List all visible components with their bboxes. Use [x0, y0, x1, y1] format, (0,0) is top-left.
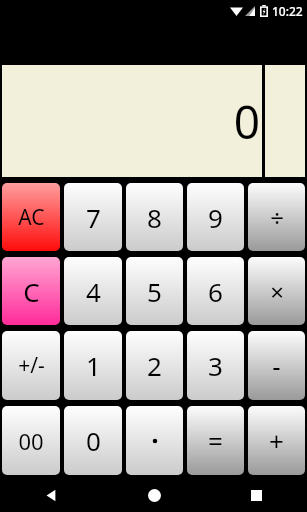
- button[interactable]: Plus: [248, 406, 305, 475]
- staticText: 8: [147, 200, 162, 235]
- staticText: 1: [86, 348, 101, 383]
- button[interactable]: 1: [64, 331, 122, 400]
- staticText: AC: [18, 203, 45, 232]
- staticText: 3: [208, 348, 223, 383]
- button[interactable]: 00: [2, 406, 60, 475]
- staticText: 4: [86, 274, 101, 309]
- staticText: +: [269, 423, 284, 458]
- button[interactable]: 4: [64, 257, 122, 325]
- button[interactable]: AC: [2, 183, 60, 251]
- button[interactable]: Back: [0, 478, 103, 512]
- button[interactable]: 3: [187, 331, 244, 400]
- staticText: 0: [86, 423, 101, 458]
- button[interactable]: Decimal point: [126, 406, 183, 475]
- staticText: 6: [208, 274, 223, 309]
- button[interactable]: Divide: [248, 183, 305, 251]
- button[interactable]: 5: [126, 257, 183, 325]
- staticText: 7: [86, 200, 101, 235]
- button[interactable]: Home: [103, 478, 205, 512]
- staticText: 5: [147, 274, 162, 309]
- staticText: =: [208, 423, 223, 458]
- button[interactable]: 0: [64, 406, 122, 475]
- staticText: -: [272, 348, 281, 383]
- button[interactable]: 7: [64, 183, 122, 251]
- staticText: 10:22: [272, 3, 303, 19]
- staticText: 2: [147, 348, 162, 383]
- button[interactable]: 6: [187, 257, 244, 325]
- button[interactable]: =: [187, 406, 244, 475]
- button[interactable]: C: [2, 257, 60, 325]
- button[interactable]: 8: [126, 183, 183, 251]
- staticText: ×: [270, 275, 284, 308]
- staticText: ÷: [270, 201, 284, 234]
- button[interactable]: 9: [187, 183, 244, 251]
- button[interactable]: Multiply: [248, 257, 305, 325]
- button[interactable]: Minus: [248, 331, 305, 400]
- button[interactable]: 2: [126, 331, 183, 400]
- staticText: C: [23, 274, 40, 309]
- button[interactable]: +/-: [2, 331, 60, 400]
- staticText: 9: [208, 200, 223, 235]
- staticText: 00: [18, 426, 44, 456]
- staticText: +/-: [18, 351, 45, 380]
- button[interactable]: Recent apps: [205, 478, 307, 512]
- staticText: 0: [233, 90, 260, 153]
